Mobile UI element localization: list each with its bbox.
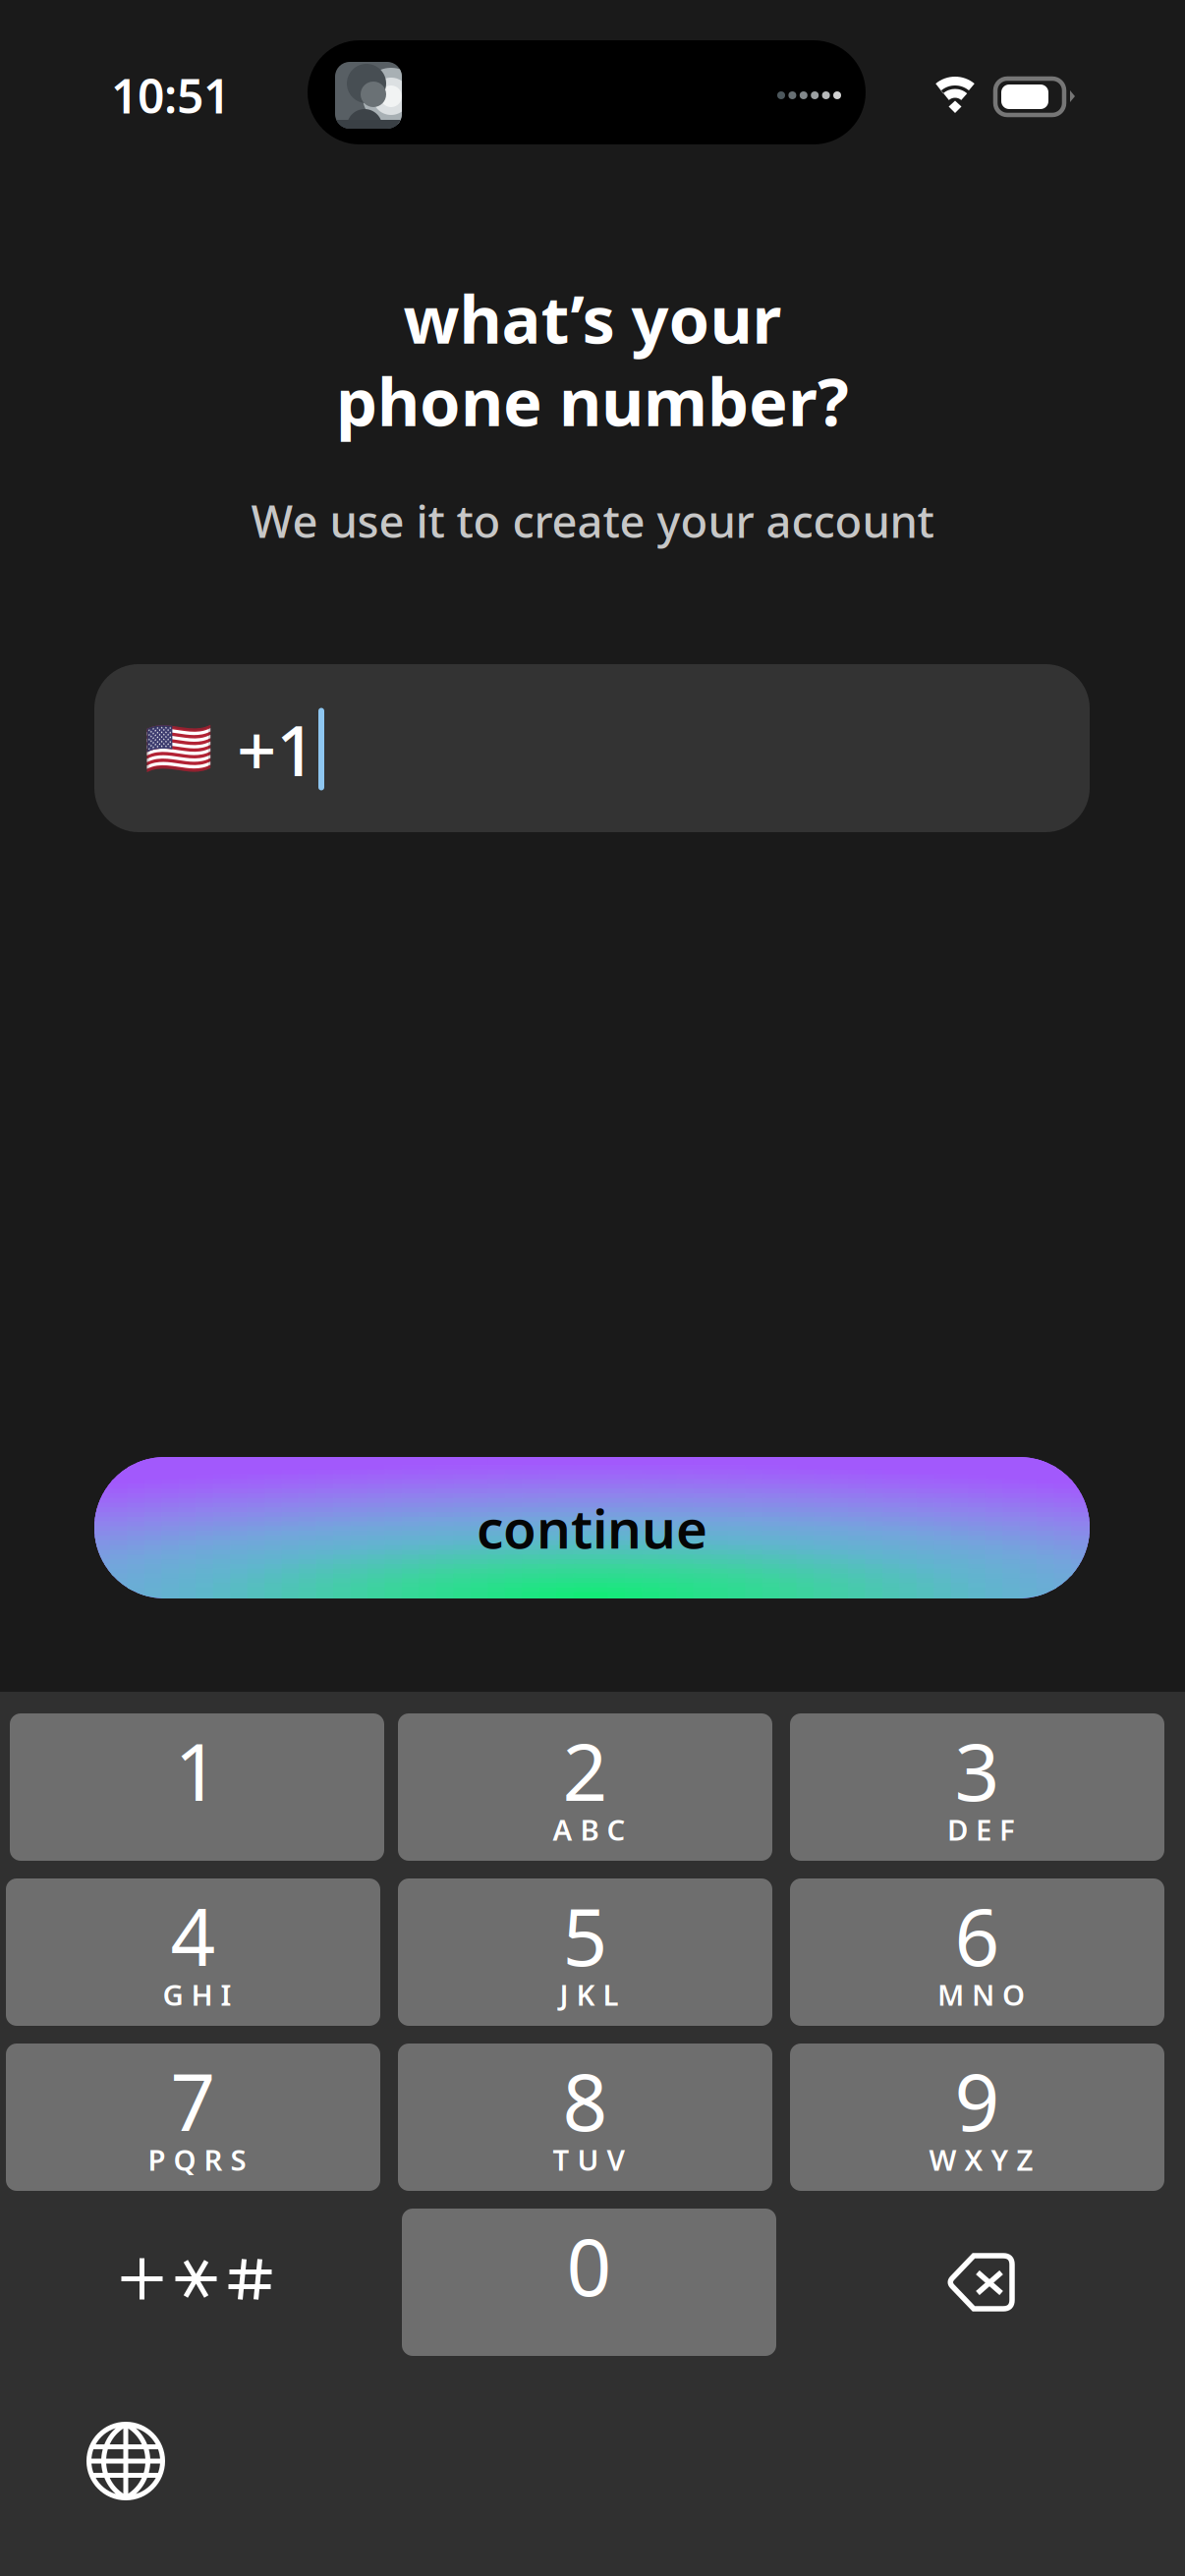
staticText: We use it to create your account bbox=[251, 491, 934, 550]
staticText: 1 bbox=[174, 1718, 220, 1823]
staticText: 🇺🇸 bbox=[144, 717, 213, 780]
staticText: JKL bbox=[560, 1975, 619, 2014]
staticText: ABC bbox=[553, 1810, 625, 1848]
button[interactable]: Phone number, United States +1 bbox=[94, 664, 1090, 832]
staticText: 7 bbox=[170, 2048, 216, 2153]
staticText: 9 bbox=[955, 2048, 1000, 2153]
staticText: GHI bbox=[163, 1975, 231, 2014]
staticText: PQRS bbox=[148, 2140, 246, 2179]
button[interactable]: 6 bbox=[794, 1878, 1168, 2026]
button[interactable]: 3 bbox=[794, 1713, 1168, 1861]
staticText: 10:51 bbox=[111, 64, 230, 126]
button[interactable]: 8 bbox=[402, 2044, 776, 2191]
button[interactable]: 7 bbox=[10, 2044, 384, 2191]
staticText: WXYZ bbox=[929, 2140, 1033, 2179]
button[interactable]: continue bbox=[94, 1457, 1090, 1598]
staticText: TUV bbox=[553, 2140, 625, 2179]
staticText: MNO bbox=[937, 1975, 1025, 2014]
staticText: 2 bbox=[563, 1718, 608, 1823]
staticText: 6 bbox=[955, 1883, 1000, 1988]
staticText: 3 bbox=[955, 1718, 1000, 1823]
button[interactable]: 4 bbox=[10, 1878, 384, 2026]
button[interactable]: 2 bbox=[402, 1713, 776, 1861]
button[interactable]: 9 bbox=[794, 2044, 1168, 2191]
button[interactable]: Change keyboard bbox=[86, 2422, 165, 2500]
staticText: 4 bbox=[170, 1883, 216, 1988]
staticText: +1 bbox=[237, 703, 315, 795]
button[interactable]: Symbols bbox=[10, 2209, 384, 2356]
staticText: 8 bbox=[563, 2048, 608, 2153]
staticText: 5 bbox=[563, 1883, 608, 1988]
staticText: continue bbox=[477, 1492, 707, 1563]
staticText: what’s your bbox=[403, 275, 782, 362]
staticText: 0 bbox=[566, 2213, 612, 2318]
staticText: phone number? bbox=[336, 357, 849, 444]
button[interactable]: 0 bbox=[402, 2209, 776, 2356]
staticText: DEF bbox=[947, 1810, 1015, 1848]
button[interactable]: 5 bbox=[402, 1878, 776, 2026]
button[interactable]: 1 bbox=[10, 1713, 384, 1861]
button[interactable]: Delete bbox=[794, 2209, 1168, 2356]
